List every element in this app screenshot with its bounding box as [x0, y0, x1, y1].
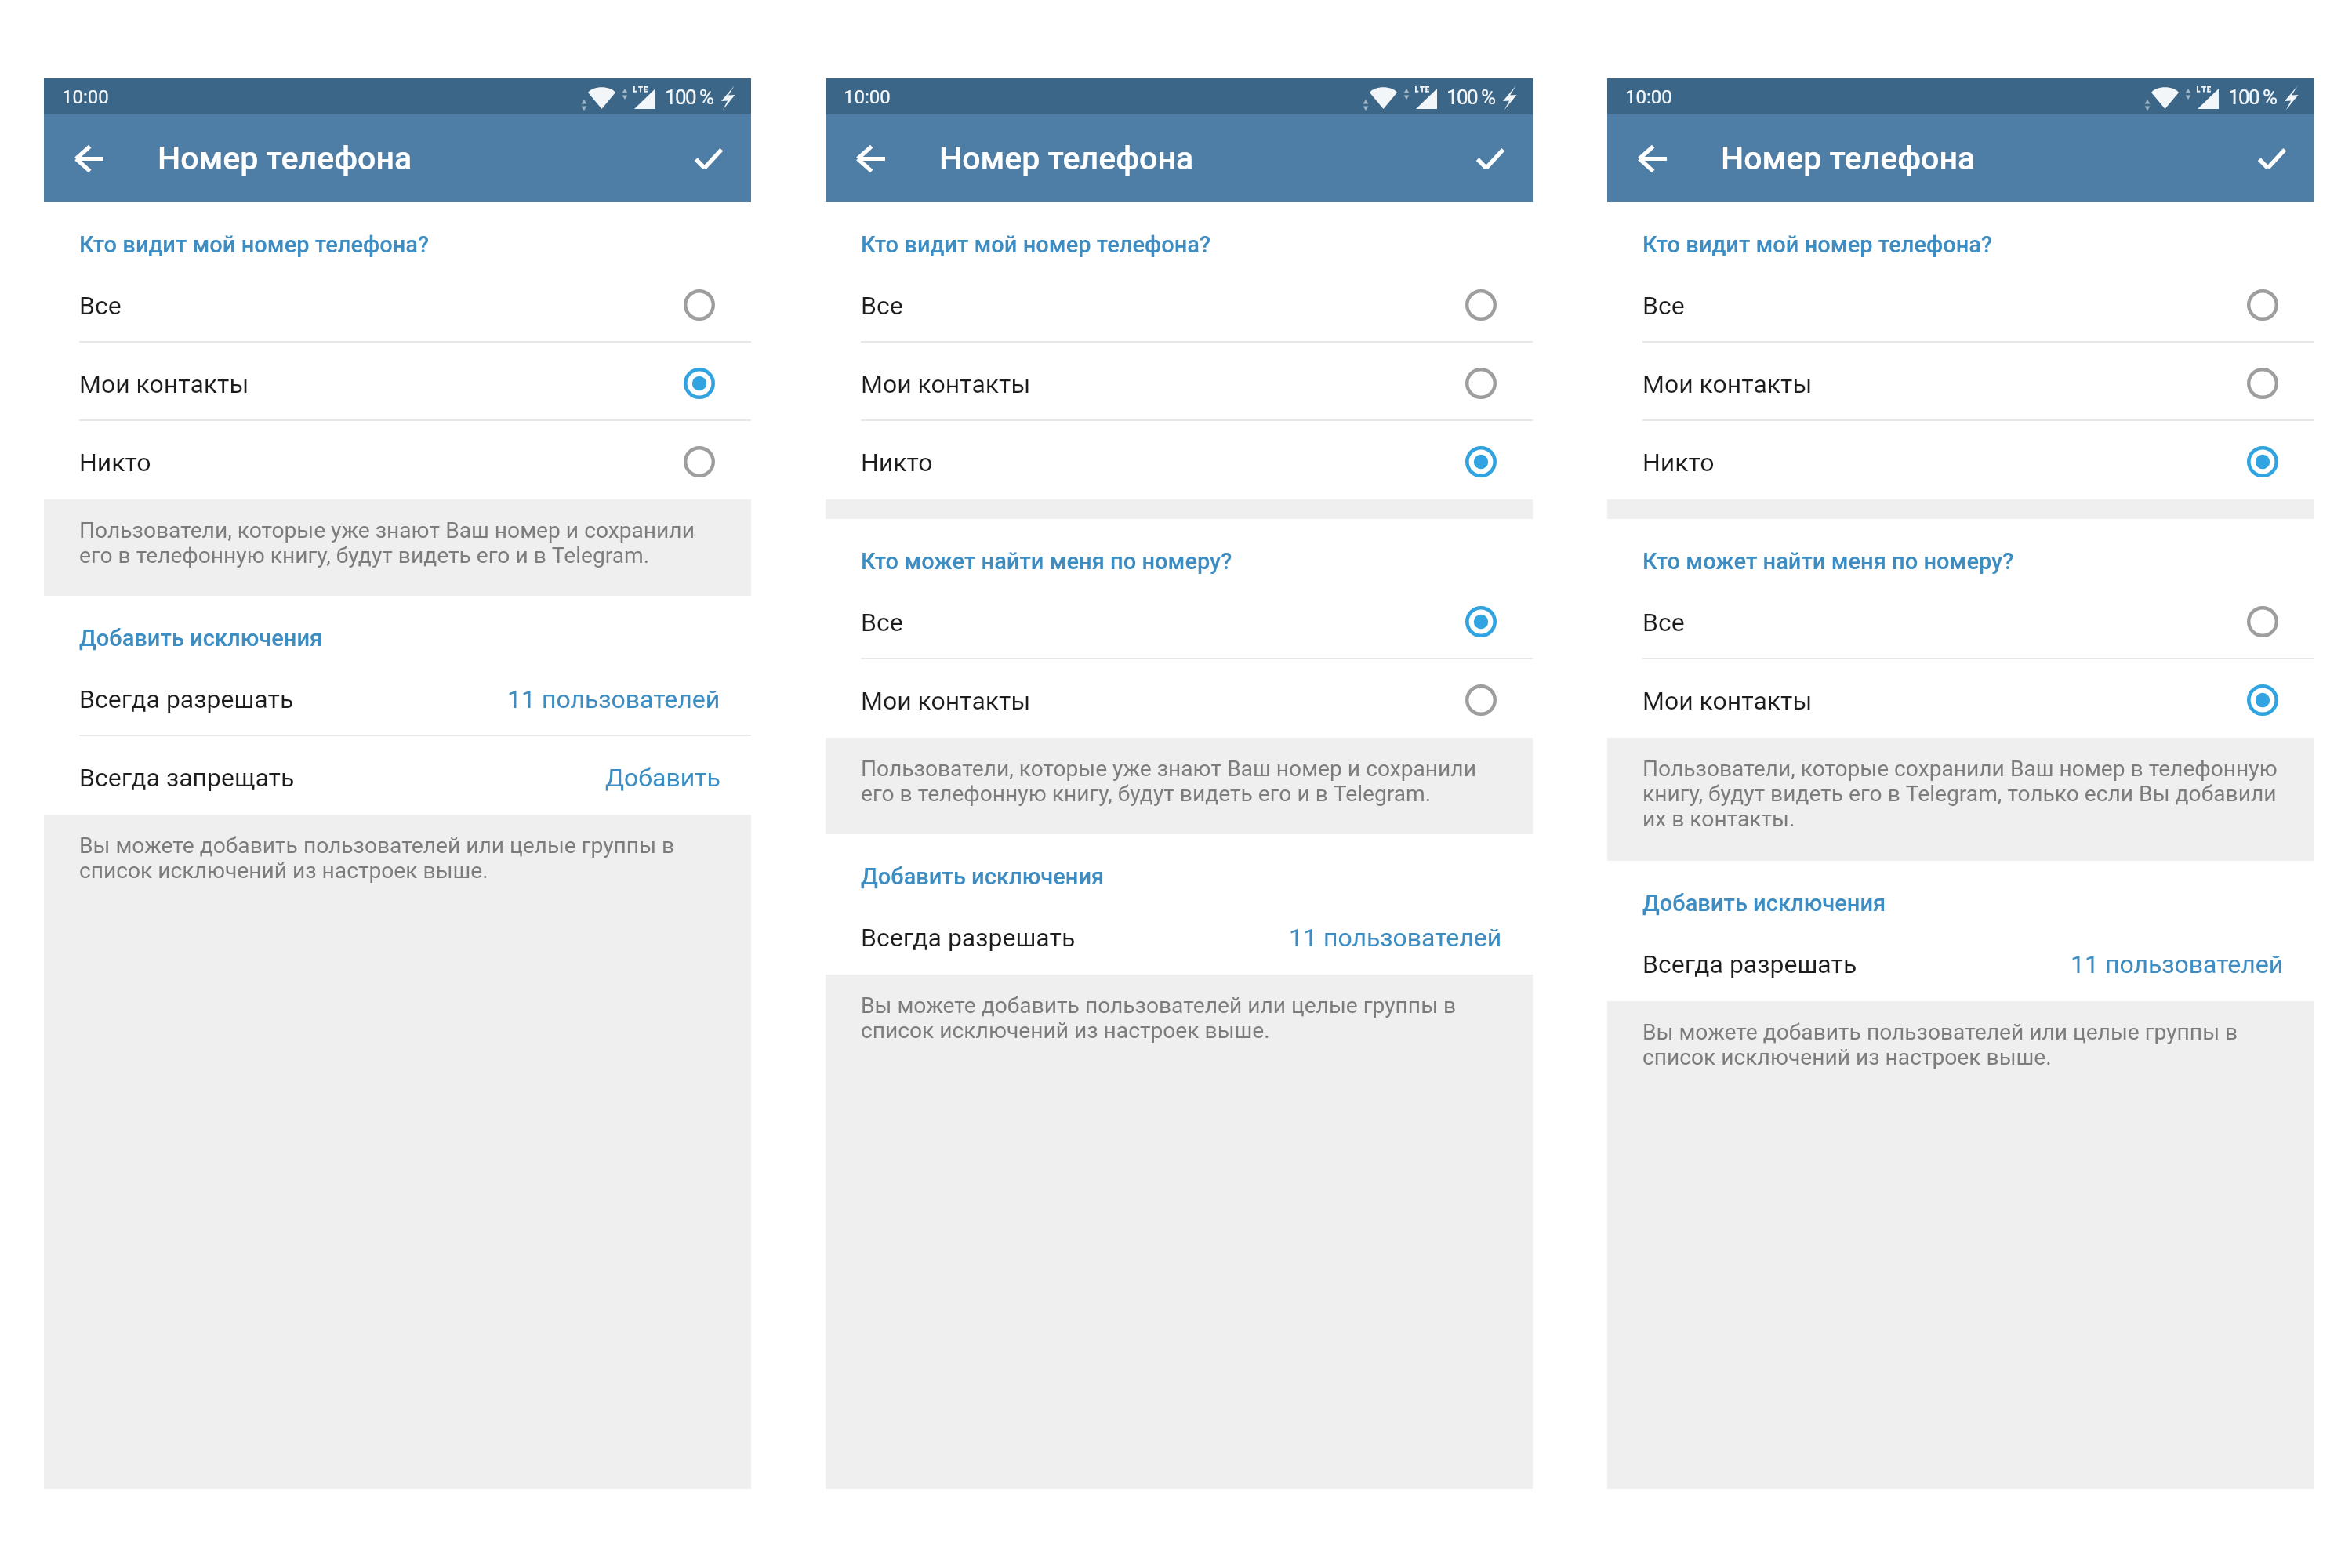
- staticText: Все: [861, 291, 903, 321]
- staticText: Кто видит мой номер телефона?: [79, 231, 430, 258]
- staticText: 100 %: [1446, 85, 1495, 109]
- staticText: Кто может найти меня по номеру?: [861, 548, 1232, 575]
- staticText: Всегда разрешать: [1642, 949, 1857, 979]
- staticText: Вы можете добавить пользователей или цел…: [861, 993, 1504, 1044]
- button[interactable]: Мои контакты: [826, 343, 1533, 421]
- staticText: Все: [1642, 608, 1685, 637]
- button[interactable]: Никто: [44, 421, 751, 499]
- staticText: Пользователи, которые сохранили Ваш номе…: [1642, 756, 2285, 832]
- staticText: Всегда разрешать: [861, 923, 1076, 953]
- staticText: Мои контакты: [861, 686, 1031, 716]
- staticText: Пользователи, которые уже знают Ваш номе…: [79, 517, 722, 568]
- staticText: Добавить исключения: [1642, 890, 1886, 916]
- button[interactable]: Все: [44, 264, 751, 343]
- staticText: Кто видит мой номер телефона?: [861, 231, 1211, 258]
- staticText: Кто может найти меня по номеру?: [1642, 548, 2014, 575]
- staticText: Добавить исключения: [79, 625, 323, 652]
- button[interactable]: Всегда разрешать: [1607, 923, 2314, 1001]
- staticText: Все: [79, 291, 122, 321]
- staticText: Номер телефона: [939, 140, 1194, 177]
- staticText: Вы можете добавить пользователей или цел…: [79, 833, 722, 884]
- button[interactable]: Все: [1607, 581, 2314, 659]
- staticText: Номер телефона: [158, 140, 412, 177]
- staticText: Никто: [79, 448, 151, 477]
- staticText: 10:00: [1625, 86, 1672, 108]
- staticText: 11 пользователей: [2071, 949, 2284, 979]
- staticText: Всегда разрешать: [79, 684, 294, 714]
- button[interactable]: Back: [844, 132, 898, 185]
- staticText: Добавить исключения: [861, 863, 1105, 890]
- staticText: Вы можете добавить пользователей или цел…: [1642, 1019, 2285, 1070]
- staticText: Кто видит мой номер телефона?: [1642, 231, 1993, 258]
- staticText: Добавить: [605, 763, 720, 793]
- staticText: 100 %: [665, 85, 713, 109]
- button[interactable]: Мои контакты: [44, 343, 751, 421]
- button[interactable]: Done: [2245, 132, 2299, 185]
- staticText: Все: [861, 608, 903, 637]
- staticText: Мои контакты: [1642, 686, 1813, 716]
- staticText: 10:00: [62, 86, 109, 108]
- button[interactable]: Мои контакты: [1607, 659, 2314, 738]
- staticText: 10:00: [844, 86, 891, 108]
- staticText: Мои контакты: [1642, 369, 1813, 399]
- button[interactable]: Мои контакты: [1607, 343, 2314, 421]
- button[interactable]: Всегда разрешать: [44, 658, 751, 736]
- staticText: Никто: [1642, 448, 1715, 477]
- staticText: 11 пользователей: [1289, 923, 1502, 953]
- staticText: Мои контакты: [79, 369, 249, 399]
- staticText: Всегда запрещать: [79, 763, 295, 793]
- button[interactable]: Всегда разрешать: [826, 896, 1533, 975]
- staticText: 100 %: [2228, 85, 2277, 109]
- button[interactable]: Back: [63, 132, 116, 185]
- staticText: Никто: [861, 448, 933, 477]
- staticText: 11 пользователей: [507, 684, 720, 714]
- button[interactable]: Все: [1607, 264, 2314, 343]
- button[interactable]: Все: [826, 581, 1533, 659]
- button[interactable]: Никто: [826, 421, 1533, 499]
- button[interactable]: Done: [1464, 132, 1517, 185]
- staticText: Пользователи, которые уже знают Ваш номе…: [861, 756, 1504, 807]
- staticText: Мои контакты: [861, 369, 1031, 399]
- staticText: Номер телефона: [1721, 140, 1976, 177]
- button[interactable]: Done: [682, 132, 735, 185]
- button[interactable]: Все: [826, 264, 1533, 343]
- button[interactable]: Мои контакты: [826, 659, 1533, 738]
- button[interactable]: Никто: [1607, 421, 2314, 499]
- staticText: Все: [1642, 291, 1685, 321]
- button[interactable]: Back: [1626, 132, 1679, 185]
- button[interactable]: Всегда запрещать: [44, 736, 751, 815]
